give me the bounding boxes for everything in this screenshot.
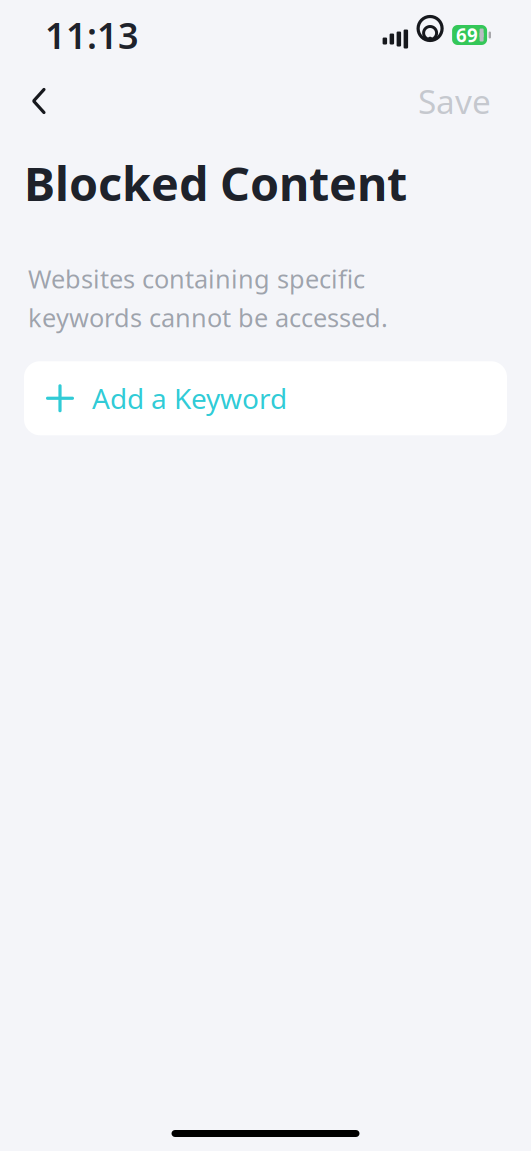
button[interactable]: Back xyxy=(10,72,68,130)
staticText: Save xyxy=(418,79,491,123)
staticText: 69 xyxy=(456,23,478,47)
button[interactable]: Save xyxy=(408,72,501,130)
staticText: Websites containing specific keywords ca… xyxy=(28,262,388,334)
staticText: 11:13 xyxy=(45,11,139,59)
staticText: Add a Keyword xyxy=(92,380,287,417)
staticText: Blocked Content xyxy=(24,152,407,214)
button[interactable]: Add a Keyword xyxy=(24,361,507,435)
